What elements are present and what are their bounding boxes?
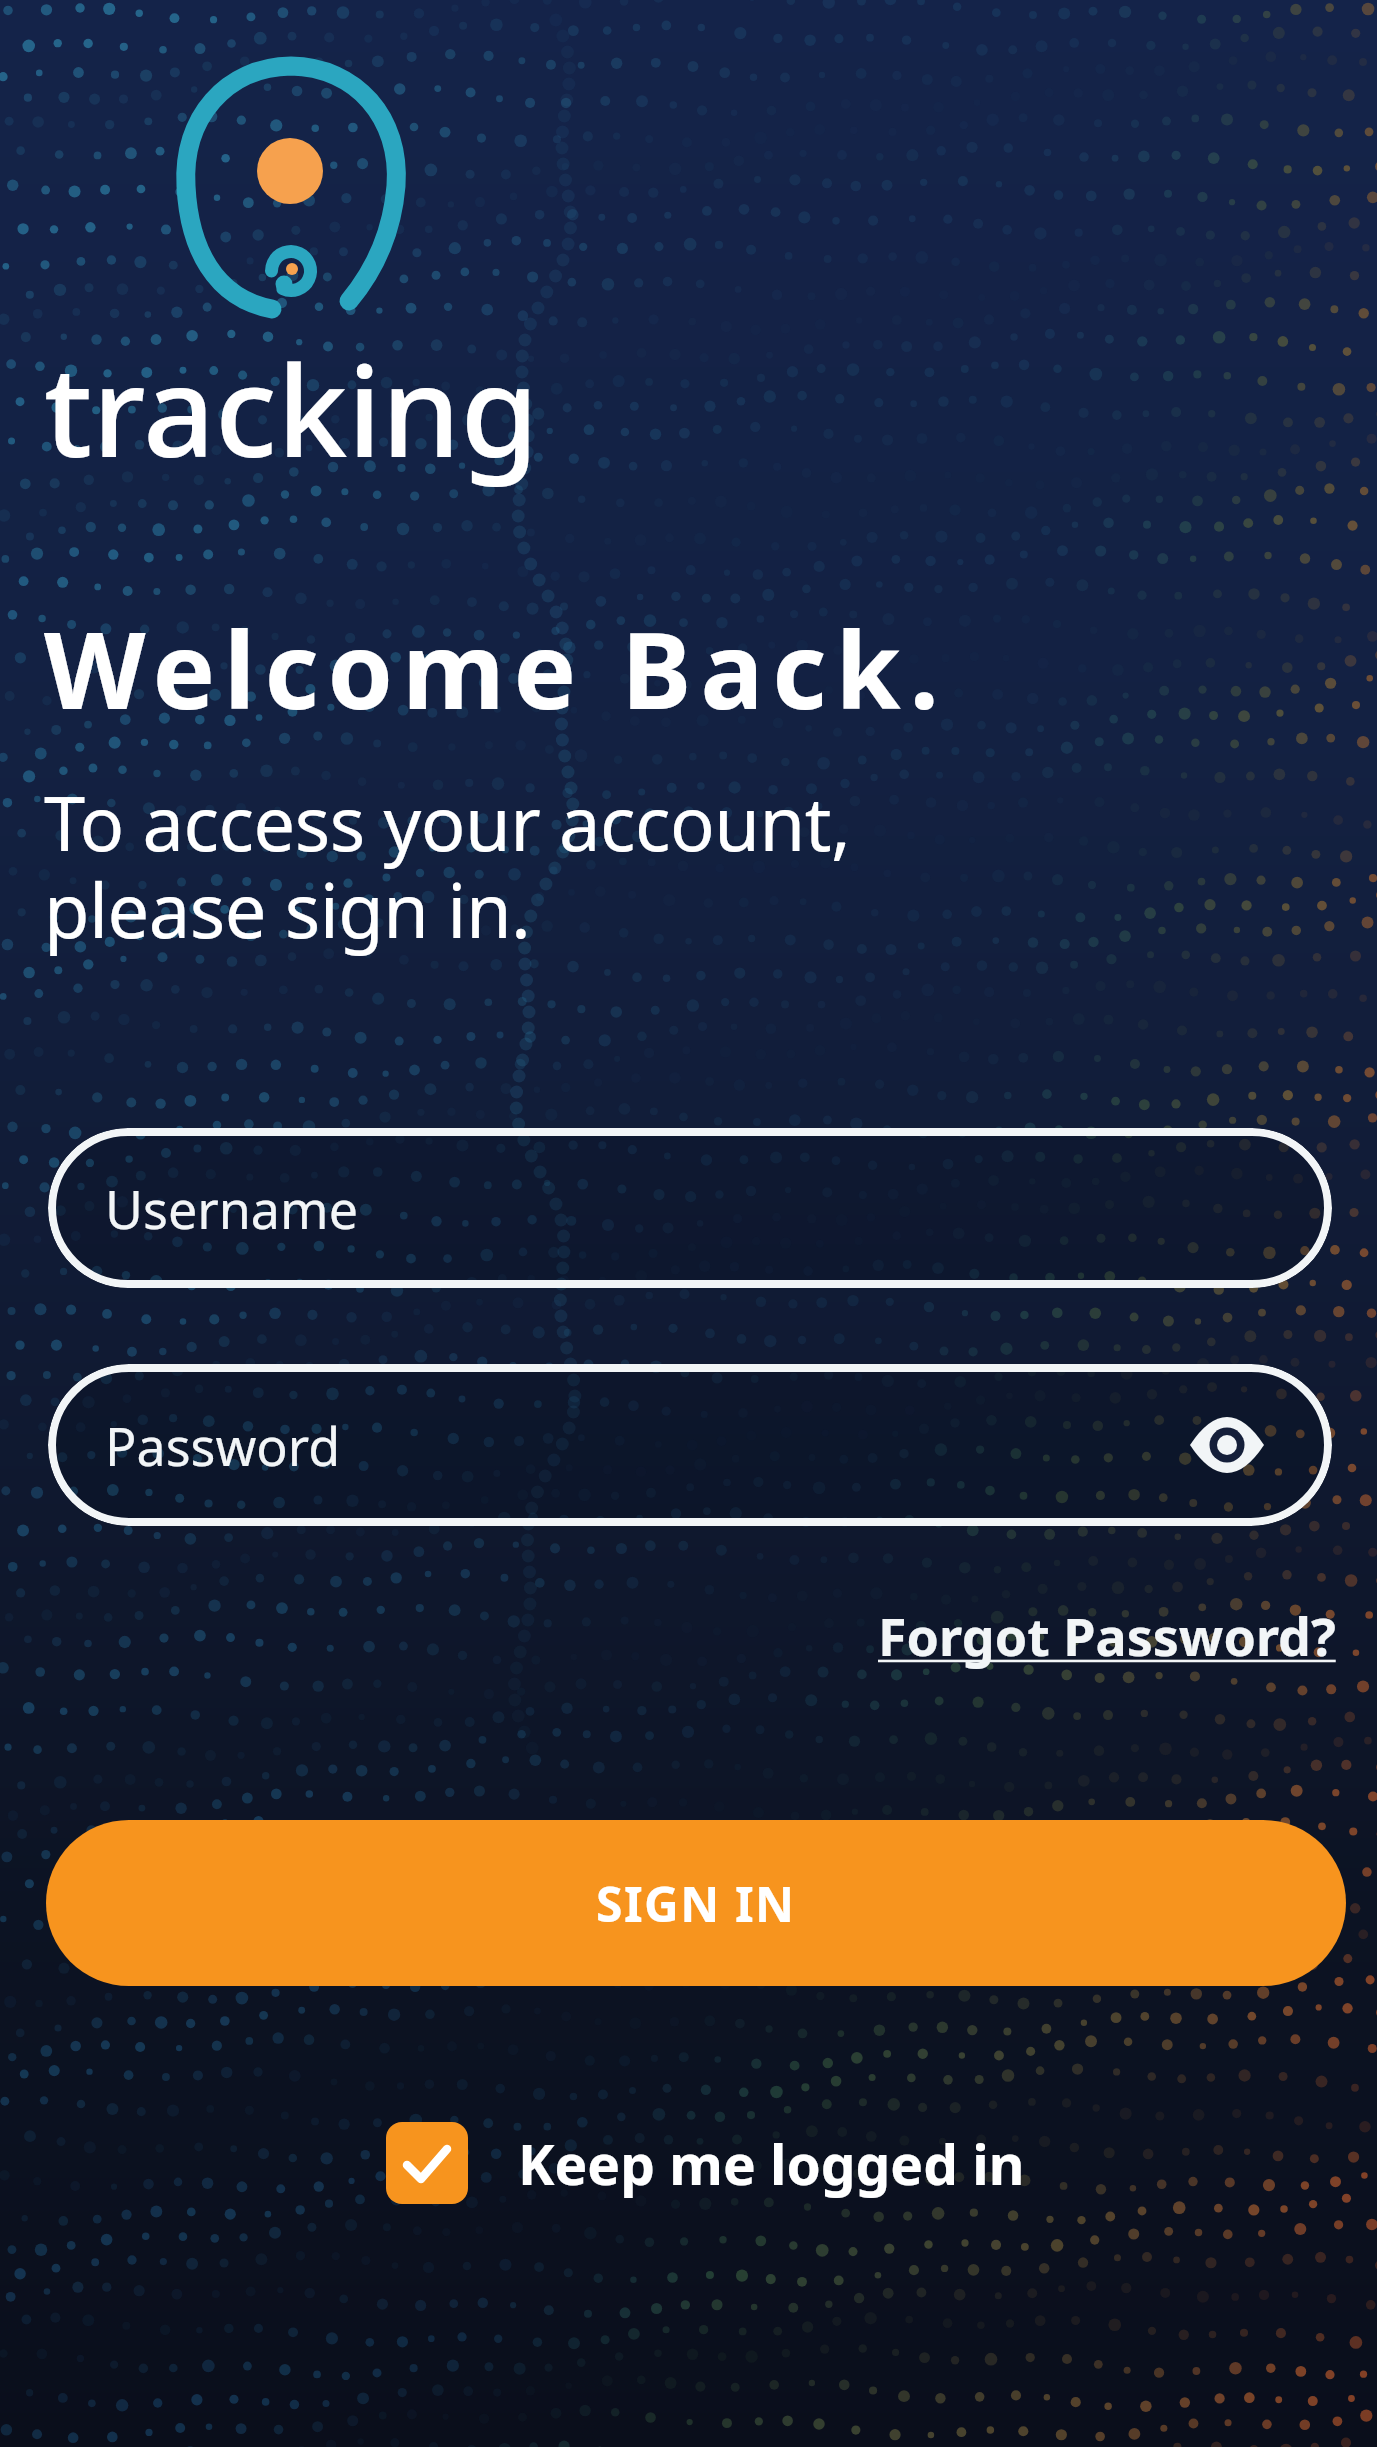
staticText: Forgot Password? bbox=[878, 1600, 1336, 1671]
button[interactable]: Username bbox=[48, 1128, 1332, 1288]
staticText: Username bbox=[105, 1173, 358, 1244]
staticText: To access your account, please sign in. bbox=[44, 772, 851, 960]
button[interactable]: Keep me logged in bbox=[386, 2122, 1025, 2204]
button[interactable] bbox=[1182, 1405, 1272, 1485]
staticText: Welcome Back. bbox=[44, 597, 949, 740]
staticText: Keep me logged in bbox=[518, 2126, 1025, 2201]
button[interactable]: Forgot Password? bbox=[878, 1600, 1336, 1671]
button[interactable]: SIGN IN bbox=[46, 1820, 1346, 1986]
staticText: Password bbox=[105, 1410, 341, 1481]
button[interactable]: Password bbox=[48, 1364, 1332, 1526]
staticText: tracking bbox=[44, 322, 539, 494]
staticText: SIGN IN bbox=[596, 1871, 796, 1936]
